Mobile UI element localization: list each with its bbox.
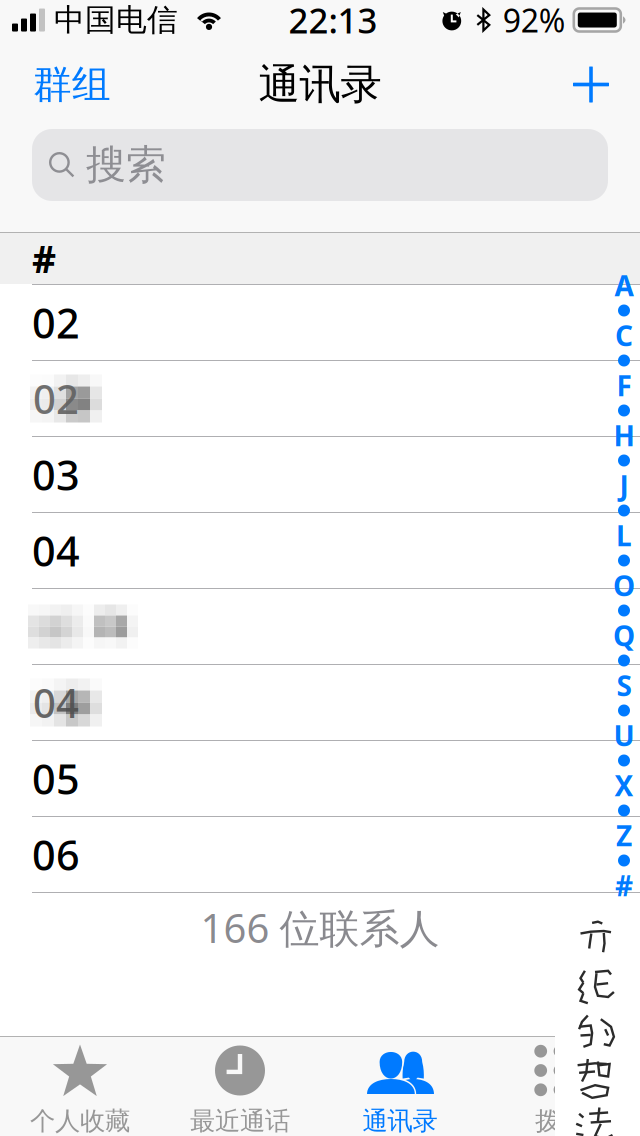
button[interactable]: 添加联系人 (569, 52, 613, 116)
staticText: 22:13 (288, 0, 377, 43)
button[interactable]: 02 (0, 285, 640, 361)
button[interactable]: 最近通话 (160, 1029, 320, 1136)
staticText: O (613, 567, 635, 604)
staticText: 拨号 (535, 1105, 585, 1136)
staticText: 02 (32, 295, 80, 350)
staticText: 92% (503, 0, 566, 41)
button[interactable]: 索引 (609, 273, 639, 898)
staticText: 个人收藏 (30, 1105, 130, 1136)
button[interactable]: 06 (0, 817, 640, 893)
button[interactable]: 群组 (27, 52, 117, 116)
staticText: # (615, 867, 633, 904)
button[interactable]: 通讯录 (320, 1029, 480, 1136)
staticText: Q (613, 617, 635, 654)
staticText: J (619, 467, 628, 504)
button[interactable]: 03 (0, 437, 640, 513)
staticText: # (32, 234, 56, 283)
staticText: 通讯录 (362, 1105, 437, 1136)
staticText: 04 (32, 523, 80, 578)
staticText: S (616, 667, 631, 704)
staticText: A (614, 267, 633, 304)
staticText: C (615, 317, 633, 354)
staticText: H (613, 417, 634, 454)
staticText: 03 (32, 447, 80, 502)
staticText: 中国电信 (54, 1, 178, 39)
staticText: 最近通话 (190, 1105, 290, 1136)
staticText: 通讯录 (258, 59, 381, 110)
button[interactable]: 05 (0, 741, 640, 817)
button[interactable] (0, 589, 640, 665)
staticText (31, 600, 51, 653)
button[interactable]: 拨号 (480, 1029, 640, 1136)
staticText: U (613, 717, 634, 754)
button[interactable]: 02 (0, 361, 640, 437)
staticText: Z (616, 817, 632, 854)
staticText: X (614, 767, 633, 804)
staticText: F (616, 367, 631, 404)
button[interactable]: 04 (0, 513, 640, 589)
staticText: 02 (33, 372, 79, 425)
staticText: 05 (32, 751, 80, 806)
staticText: 搜索 (86, 140, 166, 189)
button[interactable]: 04 (0, 665, 640, 741)
staticText: L (616, 517, 632, 554)
button[interactable]: 个人收藏 (0, 1029, 160, 1136)
staticText: 06 (32, 827, 80, 882)
staticText: 166 位联系人 (200, 901, 439, 954)
staticText: 04 (33, 676, 79, 729)
staticText: 群组 (33, 61, 111, 108)
button[interactable]: 搜索 (32, 129, 608, 201)
